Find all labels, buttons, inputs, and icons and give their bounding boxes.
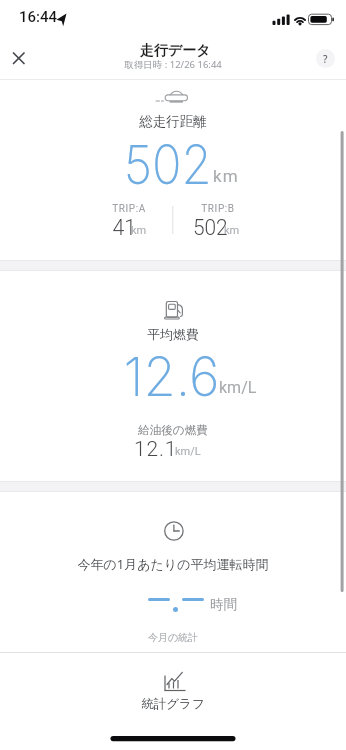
staticText: 今年の1月あたりの平均運転時間 [0,555,346,573]
staticText: ? [323,52,328,66]
staticText: km [213,166,239,186]
staticText: 給油後の燃費 [0,423,346,437]
staticText: 時間 [210,596,237,613]
staticText: 走行データ [2,42,346,60]
staticText: km [131,224,147,237]
staticText: 取得日時 : 12/26 16:44 [0,58,346,71]
staticText: 12.1 [134,437,178,462]
staticText: 12.6 [123,344,219,409]
staticText: 平均燃費 [0,326,346,342]
staticText: 502 [124,132,212,197]
staticText: 41 [112,215,137,241]
staticText: km [224,224,240,237]
staticText: 統計グラフ [0,696,346,712]
button[interactable] [120,658,226,714]
staticText: 今月の統計 [0,631,346,644]
staticText: km/L [175,445,201,458]
button[interactable] [4,44,34,74]
staticText: 16:44 [19,8,58,26]
button[interactable]: ? [316,49,335,68]
staticText: 502 [193,215,228,241]
staticText: TRIP:B [45,203,346,215]
staticText: 総走行距離 [0,113,346,130]
staticText: km/L [219,378,257,397]
staticText: TRIP:A [0,203,302,215]
